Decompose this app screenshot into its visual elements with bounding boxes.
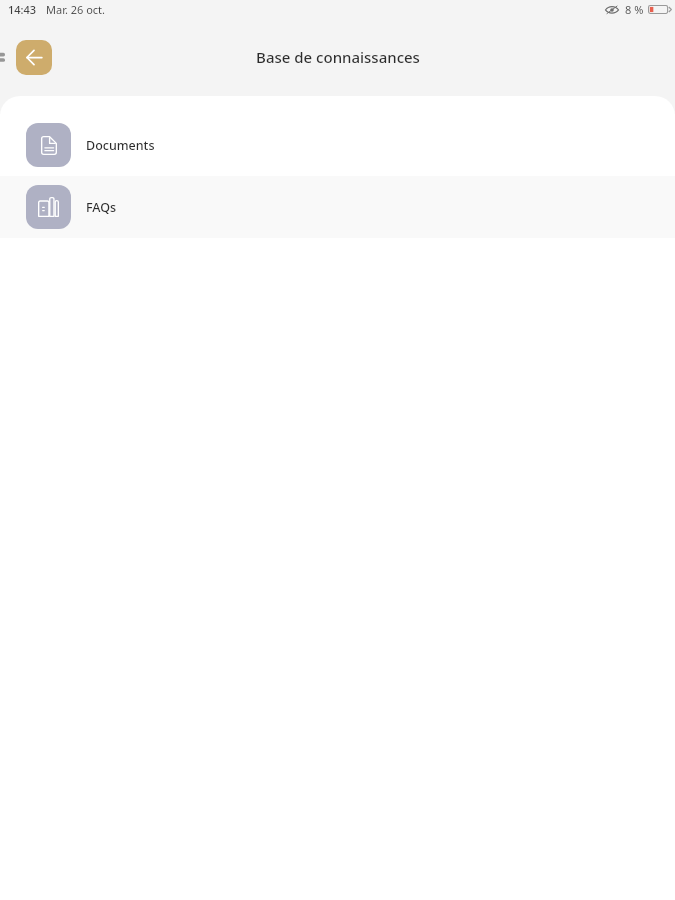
staticText: Mar. 26 oct. (46, 2, 106, 17)
button[interactable]: FAQs (0, 176, 675, 238)
button[interactable]: Documents (0, 114, 675, 176)
staticText: Base de connaissances (256, 47, 420, 67)
staticText: FAQs (86, 199, 117, 216)
staticText: Documents (86, 137, 155, 154)
button[interactable]: Back (16, 40, 52, 75)
staticText: 14:43 (8, 2, 37, 17)
staticText: 8 % (625, 2, 644, 17)
